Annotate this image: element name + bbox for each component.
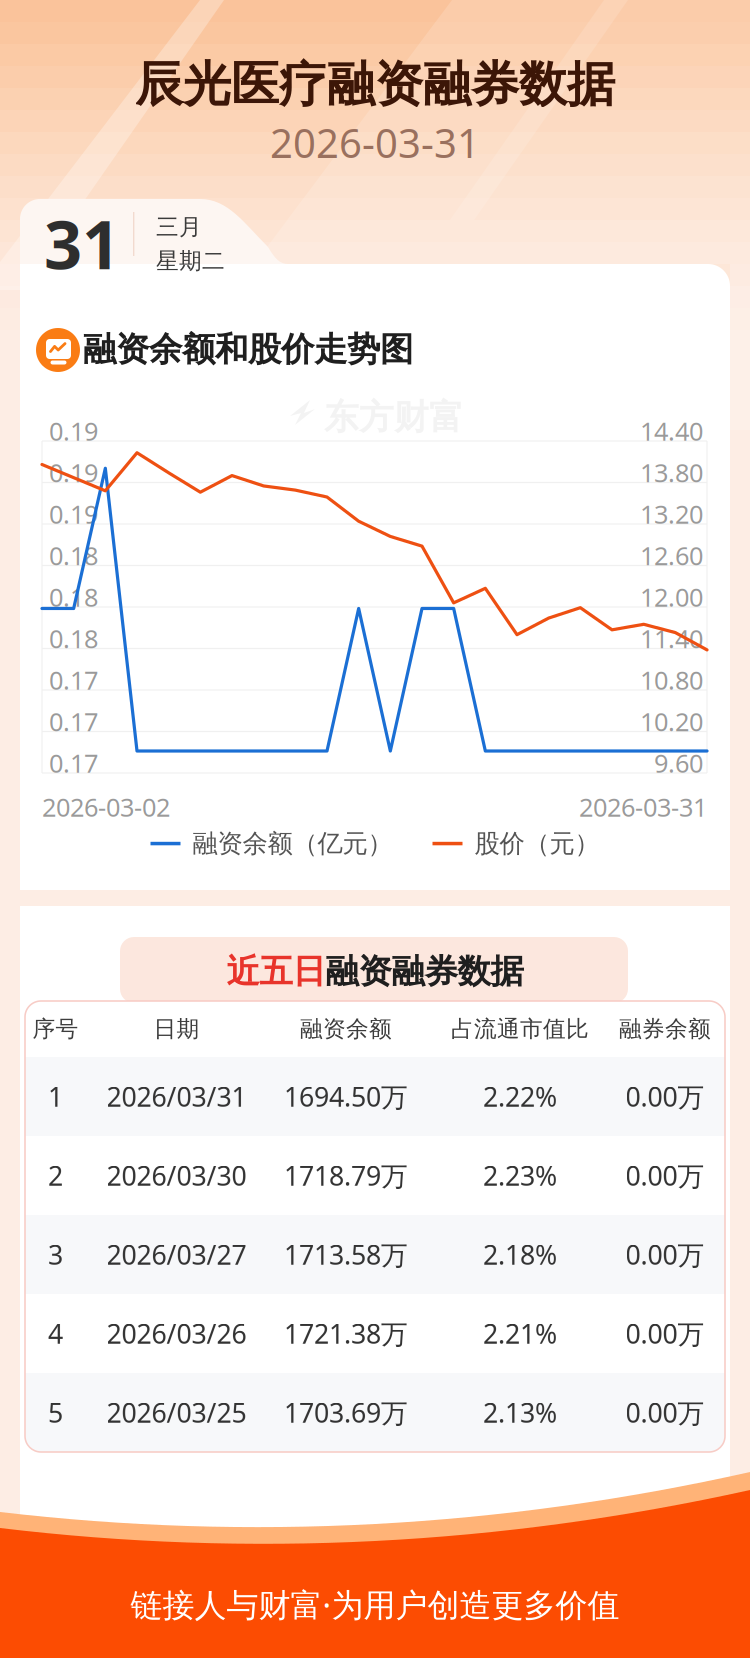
staticText: 1713.58万: [284, 1237, 408, 1272]
staticText: 链接人与财富·为用户创造更多价值: [130, 1583, 619, 1625]
staticText: 股价（元）: [474, 828, 599, 859]
staticText: 2.22%: [483, 1079, 557, 1114]
staticText: 0.18: [49, 538, 98, 572]
staticText: 三月: [156, 213, 202, 241]
staticText: 2.18%: [483, 1237, 557, 1272]
staticText: 2026/03/30: [106, 1158, 246, 1193]
staticText: 12.00: [640, 580, 703, 614]
staticText: 14.40: [640, 414, 703, 448]
staticText: 4: [48, 1316, 63, 1351]
staticText: 2026/03/26: [106, 1316, 246, 1351]
staticText: 2026/03/31: [106, 1079, 246, 1114]
staticText: 东方财富: [324, 1228, 464, 1271]
staticText: 1694.50万: [284, 1079, 408, 1114]
staticText: 2.13%: [483, 1395, 557, 1430]
staticText: 0.19: [49, 414, 98, 448]
staticText: 2: [48, 1158, 63, 1193]
staticText: 12.60: [640, 538, 703, 572]
staticText: 9.60: [654, 746, 703, 780]
staticText: 0.00万: [625, 1395, 704, 1430]
staticText: 0.00万: [625, 1237, 704, 1272]
staticText: 0.17: [49, 663, 98, 697]
staticText: 0.18: [49, 621, 98, 655]
staticText: 1718.79万: [284, 1158, 408, 1193]
staticText: 0.00万: [625, 1158, 704, 1193]
staticText: 1721.38万: [284, 1316, 408, 1351]
staticText: 11.40: [640, 621, 703, 655]
staticText: 5: [48, 1395, 63, 1430]
staticText: 0.17: [49, 746, 98, 780]
staticText: 2.23%: [483, 1158, 557, 1193]
staticText: 融资余额: [300, 1015, 392, 1043]
staticText: 3: [48, 1237, 63, 1272]
staticText: 融券余额: [619, 1015, 711, 1043]
staticText: 融资融券数据: [325, 951, 523, 992]
staticText: 星期二: [156, 247, 225, 275]
staticText: 融资余额（亿元）: [192, 828, 392, 859]
staticText: 0.17: [49, 704, 98, 738]
staticText: 2026-03-31: [579, 790, 707, 824]
staticText: 13.20: [640, 497, 703, 531]
staticText: 10.20: [640, 704, 703, 738]
staticText: 近五日: [226, 951, 325, 992]
staticText: 2026-03-02: [42, 790, 170, 824]
staticText: 0.00万: [625, 1079, 704, 1114]
staticText: 0.00万: [625, 1316, 704, 1351]
staticText: 2.21%: [483, 1316, 557, 1351]
staticText: 0.18: [49, 580, 98, 614]
staticText: 10.80: [640, 663, 703, 697]
staticText: 东方财富: [324, 396, 464, 439]
staticText: 1703.69万: [284, 1395, 408, 1430]
staticText: 辰光医疗融资融券数据: [135, 55, 615, 114]
staticText: 占流通市值比: [451, 1015, 589, 1043]
staticText: 日期: [153, 1015, 199, 1043]
staticText: 1: [48, 1079, 63, 1114]
staticText: 0.19: [49, 455, 98, 489]
staticText: 融资余额和股价走势图: [83, 329, 413, 370]
staticText: 2026/03/25: [106, 1395, 246, 1430]
staticText: 0.19: [49, 497, 98, 531]
staticText: 序号: [32, 1015, 78, 1043]
staticText: 2026-03-31: [270, 116, 480, 169]
staticText: 13.80: [640, 455, 703, 489]
staticText: 31: [44, 199, 120, 287]
staticText: 2026/03/27: [106, 1237, 246, 1272]
